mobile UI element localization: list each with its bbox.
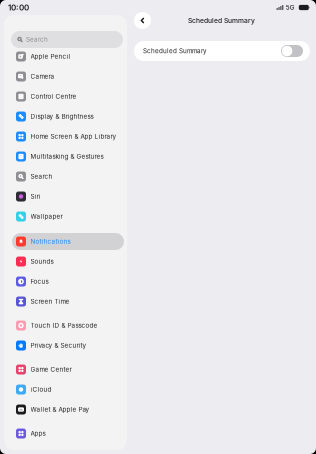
staticText: Display & Brightness — [30, 113, 93, 120]
staticText: Touch ID & Passcode — [30, 322, 97, 329]
button[interactable]: Search — [12, 168, 124, 185]
button[interactable]: Back — [134, 12, 151, 29]
button[interactable]: Notifications — [12, 233, 124, 250]
button[interactable]: Touch ID & Passcode — [12, 317, 124, 334]
staticText: Search — [30, 173, 52, 180]
staticText: 5G — [286, 4, 295, 11]
staticText: Control Centre — [30, 93, 76, 100]
button[interactable]: Control Centre — [12, 88, 124, 105]
staticText: Wallpaper — [30, 213, 62, 220]
staticText: Scheduled Summary — [143, 47, 207, 55]
button[interactable]: Wallet & Apple Pay — [12, 401, 124, 418]
button[interactable]: Camera — [12, 68, 124, 85]
button[interactable]: Privacy & Security — [12, 337, 124, 354]
staticText: Apps — [30, 430, 45, 437]
staticText: 10:00 — [8, 3, 29, 12]
staticText: Sounds — [30, 258, 53, 265]
button[interactable]: Wallpaper — [12, 208, 124, 225]
button[interactable]: Scheduled Summary toggle — [281, 45, 303, 57]
staticText: Siri — [30, 193, 40, 200]
staticText: Camera — [30, 73, 54, 80]
staticText: Game Center — [30, 366, 71, 373]
button[interactable]: iCloud — [12, 381, 124, 398]
staticText: Scheduled Summary — [188, 16, 255, 25]
staticText: Multitasking & Gestures — [30, 153, 103, 160]
staticText: Privacy & Security — [30, 342, 86, 349]
button[interactable]: Home Screen & App Library — [12, 128, 124, 145]
staticText: Search — [26, 36, 48, 43]
staticText: Home Screen & App Library — [30, 133, 116, 140]
button[interactable]: Apps — [12, 425, 124, 442]
button[interactable]: Multitasking & Gestures — [12, 148, 124, 165]
button[interactable]: Screen Time — [12, 293, 124, 310]
staticText: Apple Pencil — [30, 53, 70, 60]
staticText: Screen Time — [30, 298, 69, 305]
staticText: Wallet & Apple Pay — [30, 406, 89, 413]
button[interactable]: Game Center — [12, 361, 124, 378]
button[interactable]: Focus — [12, 273, 124, 290]
button[interactable]: Siri — [12, 188, 124, 205]
button[interactable]: Display & Brightness — [12, 108, 124, 125]
button[interactable]: Apple Pencil — [12, 48, 124, 65]
button[interactable]: Sounds — [12, 253, 124, 270]
staticText: Notifications — [30, 238, 70, 245]
staticText: Focus — [30, 278, 48, 285]
staticText: iCloud — [30, 386, 51, 393]
